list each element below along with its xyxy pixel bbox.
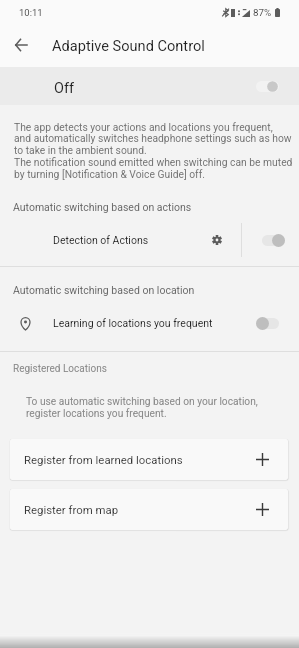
staticText: Registered Locations	[13, 363, 107, 375]
staticText: Automatic switching based on location	[13, 284, 195, 296]
staticText: Detection of Actions	[53, 234, 149, 246]
button[interactable]: Back	[3, 27, 39, 63]
button[interactable]: Settings	[202, 225, 232, 255]
staticText: 10:11	[19, 7, 43, 18]
staticText: Adaptive Sound Control	[52, 37, 205, 54]
button[interactable]: Learning of locations you frequent	[0, 306, 299, 340]
staticText: To use automatic switching based on your…	[26, 396, 279, 420]
staticText: The app detects your actions and locatio…	[14, 121, 293, 181]
staticText: Register from learned locations	[24, 453, 183, 466]
staticText: Register from map	[24, 503, 119, 516]
staticText: Automatic switching based on actions	[13, 201, 192, 213]
staticText: Off	[54, 80, 74, 97]
staticText: 87%	[253, 7, 272, 18]
button[interactable]: Register from learned locations	[10, 439, 288, 480]
button[interactable]: Register from map	[10, 489, 288, 530]
button[interactable]: Off	[0, 67, 299, 105]
button[interactable]	[242, 223, 299, 257]
staticText: Learning of locations you frequent	[53, 317, 213, 329]
button[interactable]: Detection of Actions	[0, 223, 241, 257]
